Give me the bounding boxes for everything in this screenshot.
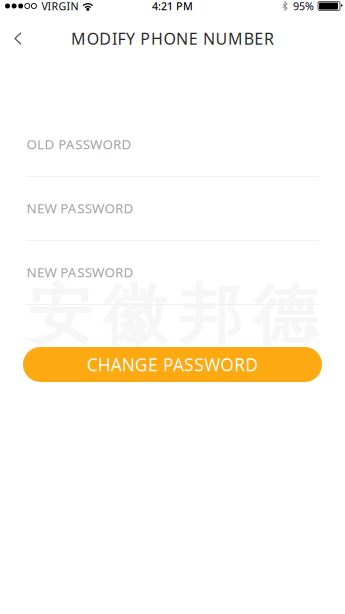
staticText: CHANGE PASSWORD xyxy=(87,353,258,376)
staticText: OLD PASSWORD xyxy=(26,135,131,153)
staticText: NEW PASSWORD xyxy=(26,199,133,217)
staticText: 安徽邦德 xyxy=(28,276,317,355)
button[interactable]: OLD PASSWORD xyxy=(26,133,318,177)
staticText: 95% xyxy=(293,0,314,13)
button[interactable]: NEW PASSWORD xyxy=(26,197,318,241)
staticText: VIRGIN xyxy=(41,0,78,13)
staticText: MODIFY PHONE NUMBER xyxy=(71,28,274,49)
staticText: 4:21 PM xyxy=(152,0,193,13)
button[interactable]: NEW PASSWORD xyxy=(26,261,318,305)
button[interactable]: Back xyxy=(0,21,36,55)
staticText: NEW PASSWORD xyxy=(26,263,133,281)
button[interactable]: CHANGE PASSWORD xyxy=(23,347,322,382)
